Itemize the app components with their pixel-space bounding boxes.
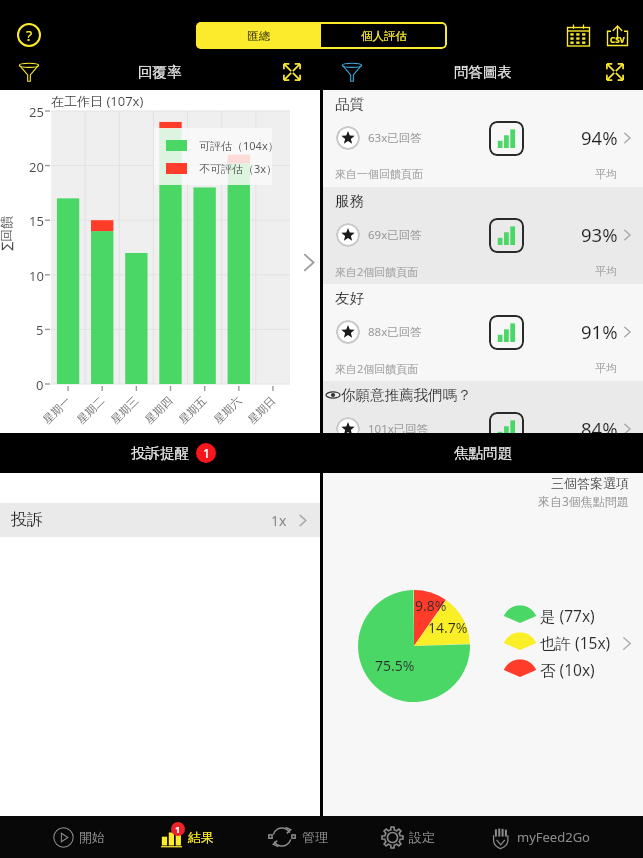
staticText: myFeed2Go xyxy=(517,828,590,846)
staticText: 15 xyxy=(29,212,44,230)
staticText: 個人評估 xyxy=(361,29,407,43)
staticText: 是 (77x) xyxy=(540,605,595,626)
staticText: 投訴提醒 xyxy=(131,444,189,462)
staticText: 星期一 xyxy=(40,393,73,427)
staticText: 9.8% xyxy=(415,596,447,615)
button[interactable]: 三個答案選項 xyxy=(323,473,643,816)
staticText: 在工作日 (107x) xyxy=(51,92,144,110)
staticText: 來自2個回饋頁面 xyxy=(335,264,419,279)
staticText: 回覆率 xyxy=(138,63,182,81)
staticText: 三個答案選項 xyxy=(551,475,629,491)
staticText: 品質 xyxy=(335,95,364,113)
staticText: 你願意推薦我們嗎？ xyxy=(341,386,472,404)
button[interactable]: 匯總 xyxy=(196,22,321,49)
staticText: 75.5% xyxy=(375,656,415,675)
staticText: 88x已回答 xyxy=(368,324,422,340)
button[interactable]: 設定 xyxy=(381,816,435,858)
button[interactable]: 1 xyxy=(159,816,214,858)
button[interactable]: Help xyxy=(12,18,46,52)
staticText: 星期日 xyxy=(245,393,278,427)
staticText: 平均 xyxy=(595,167,617,181)
staticText: 否 (10x) xyxy=(540,659,595,680)
staticText: 匯總 xyxy=(247,29,270,43)
staticText: 20 xyxy=(29,158,44,176)
button[interactable]: 投訴 xyxy=(0,503,320,537)
staticText: 94% xyxy=(581,125,618,149)
staticText: 平均 xyxy=(595,361,617,375)
staticText: 5 xyxy=(36,321,44,339)
button[interactable]: 個人評估 xyxy=(321,22,447,49)
staticText: 星期二 xyxy=(74,393,107,427)
button[interactable]: Expand xyxy=(600,57,630,87)
button[interactable]: Expand xyxy=(277,57,307,87)
staticText: 星期六 xyxy=(211,393,244,427)
staticText: CSV xyxy=(610,34,625,45)
staticText: 來自3個焦點問題 xyxy=(538,493,629,509)
button[interactable]: 服務 xyxy=(323,187,643,284)
staticText: 投訴 xyxy=(11,510,43,530)
staticText: 101x已回答 xyxy=(368,421,429,437)
staticText: 設定 xyxy=(409,829,435,845)
staticText: 問答圖表 xyxy=(454,63,512,81)
button[interactable]: myFeed2Go xyxy=(489,816,590,858)
staticText: 也許 (15x) xyxy=(540,632,611,653)
button[interactable]: 品質 xyxy=(323,90,643,187)
staticText: 不可評估（3x） xyxy=(199,161,278,176)
staticText: 25 xyxy=(29,103,44,121)
button[interactable]: 你願意推薦我們嗎？ xyxy=(323,381,643,433)
staticText: 星期四 xyxy=(142,393,175,427)
staticText: 開始 xyxy=(79,829,105,845)
staticText: 63x已回答 xyxy=(368,130,422,146)
staticText: 來自一個回饋頁面 xyxy=(335,167,423,181)
staticText: 可評估（104x） xyxy=(199,138,279,153)
staticText: 平均 xyxy=(595,264,617,278)
staticText: 服務 xyxy=(335,192,364,210)
staticText: 1x xyxy=(271,511,287,530)
staticText: 10 xyxy=(29,267,44,285)
button[interactable]: Next chart xyxy=(294,248,322,276)
staticText: 0 xyxy=(36,376,44,394)
button[interactable]: 開始 xyxy=(53,816,105,858)
staticText: 管理 xyxy=(302,829,328,845)
staticText: 1 xyxy=(175,823,181,835)
staticText: 84% xyxy=(581,416,618,440)
staticText: ? xyxy=(26,26,33,45)
staticText: 結果 xyxy=(188,829,214,845)
staticText: ∑回饋 xyxy=(0,215,13,250)
staticText: 來自2個回饋頁面 xyxy=(335,361,419,376)
staticText: 焦點問題 xyxy=(454,444,512,462)
staticText: 星期三 xyxy=(108,393,141,427)
button[interactable]: Calendar xyxy=(560,17,596,53)
staticText: 91% xyxy=(581,319,618,343)
staticText: 星期五 xyxy=(176,393,209,427)
button[interactable]: Filter xyxy=(337,57,367,87)
button[interactable]: Filter xyxy=(14,57,44,87)
button[interactable]: Export CSV xyxy=(599,17,635,53)
staticText: 69x已回答 xyxy=(368,227,422,243)
button[interactable]: 友好 xyxy=(323,284,643,381)
staticText: 14.7% xyxy=(428,618,468,637)
staticText: 93% xyxy=(581,222,618,246)
staticText: 友好 xyxy=(335,289,364,307)
staticText: 1 xyxy=(203,445,210,461)
button[interactable]: 管理 xyxy=(267,816,328,858)
